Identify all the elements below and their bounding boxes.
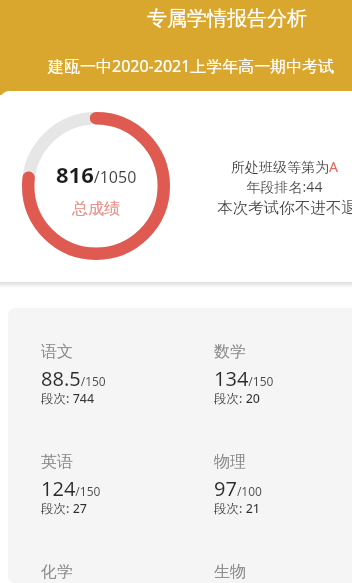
staticText: 134/150: [214, 365, 274, 392]
staticText: 数学: [214, 342, 246, 362]
staticText: 化学: [41, 562, 73, 582]
staticText: 物理: [214, 452, 246, 472]
staticText: 生物: [214, 562, 246, 582]
staticText: 专属学情报告分析: [147, 6, 307, 31]
staticText: 所处班级等第为A: [217, 157, 352, 176]
button[interactable]: 化学: [41, 562, 191, 582]
button[interactable]: 英语: [41, 452, 191, 519]
staticText: 段次: 21: [214, 500, 260, 517]
staticText: 英语: [41, 452, 73, 472]
button[interactable]: 生物: [214, 562, 352, 582]
staticText: 建瓯一中2020-2021上学年高一期中考试: [48, 55, 335, 77]
staticText: 88.5/150: [41, 365, 106, 392]
button[interactable]: 物理: [214, 452, 352, 519]
staticText: 816/1050: [56, 159, 137, 189]
button[interactable]: 数学: [214, 342, 352, 409]
staticText: 段次: 20: [214, 390, 260, 407]
button[interactable]: 语文: [41, 342, 191, 409]
staticText: 语文: [41, 342, 73, 362]
staticText: 段次: 744: [41, 390, 95, 407]
staticText: 本次考试你不进不退: [217, 198, 352, 218]
staticText: 97/100: [214, 475, 262, 502]
staticText: 总成绩: [72, 199, 120, 219]
staticText: 124/150: [41, 475, 101, 502]
staticText: 年段排名:44: [217, 177, 352, 196]
staticText: 段次: 27: [41, 500, 87, 517]
